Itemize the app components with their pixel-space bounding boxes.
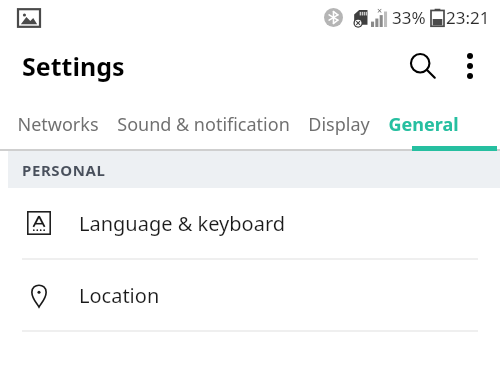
button[interactable]: General — [388, 97, 459, 151]
staticText: 23:21 — [446, 6, 490, 29]
button[interactable]: Sound & notification — [117, 97, 290, 151]
staticText: Networks — [17, 112, 99, 137]
button[interactable]: Display — [308, 97, 370, 151]
staticText: Language & keyboard — [79, 210, 286, 237]
button[interactable]: Location — [0, 260, 500, 330]
staticText: Settings — [22, 49, 125, 83]
staticText: Sound & notification — [117, 112, 290, 137]
button[interactable]: Networks — [17, 97, 99, 151]
button[interactable]: Search — [400, 43, 446, 89]
staticText: PERSONAL — [22, 160, 106, 180]
button[interactable]: Language & keyboard — [0, 188, 500, 258]
staticText: × — [377, 4, 383, 16]
staticText: Display — [308, 112, 370, 137]
staticText: 33% — [392, 6, 426, 29]
staticText: General — [388, 112, 459, 137]
staticText: Location — [79, 282, 160, 309]
button[interactable]: More options — [448, 44, 492, 88]
